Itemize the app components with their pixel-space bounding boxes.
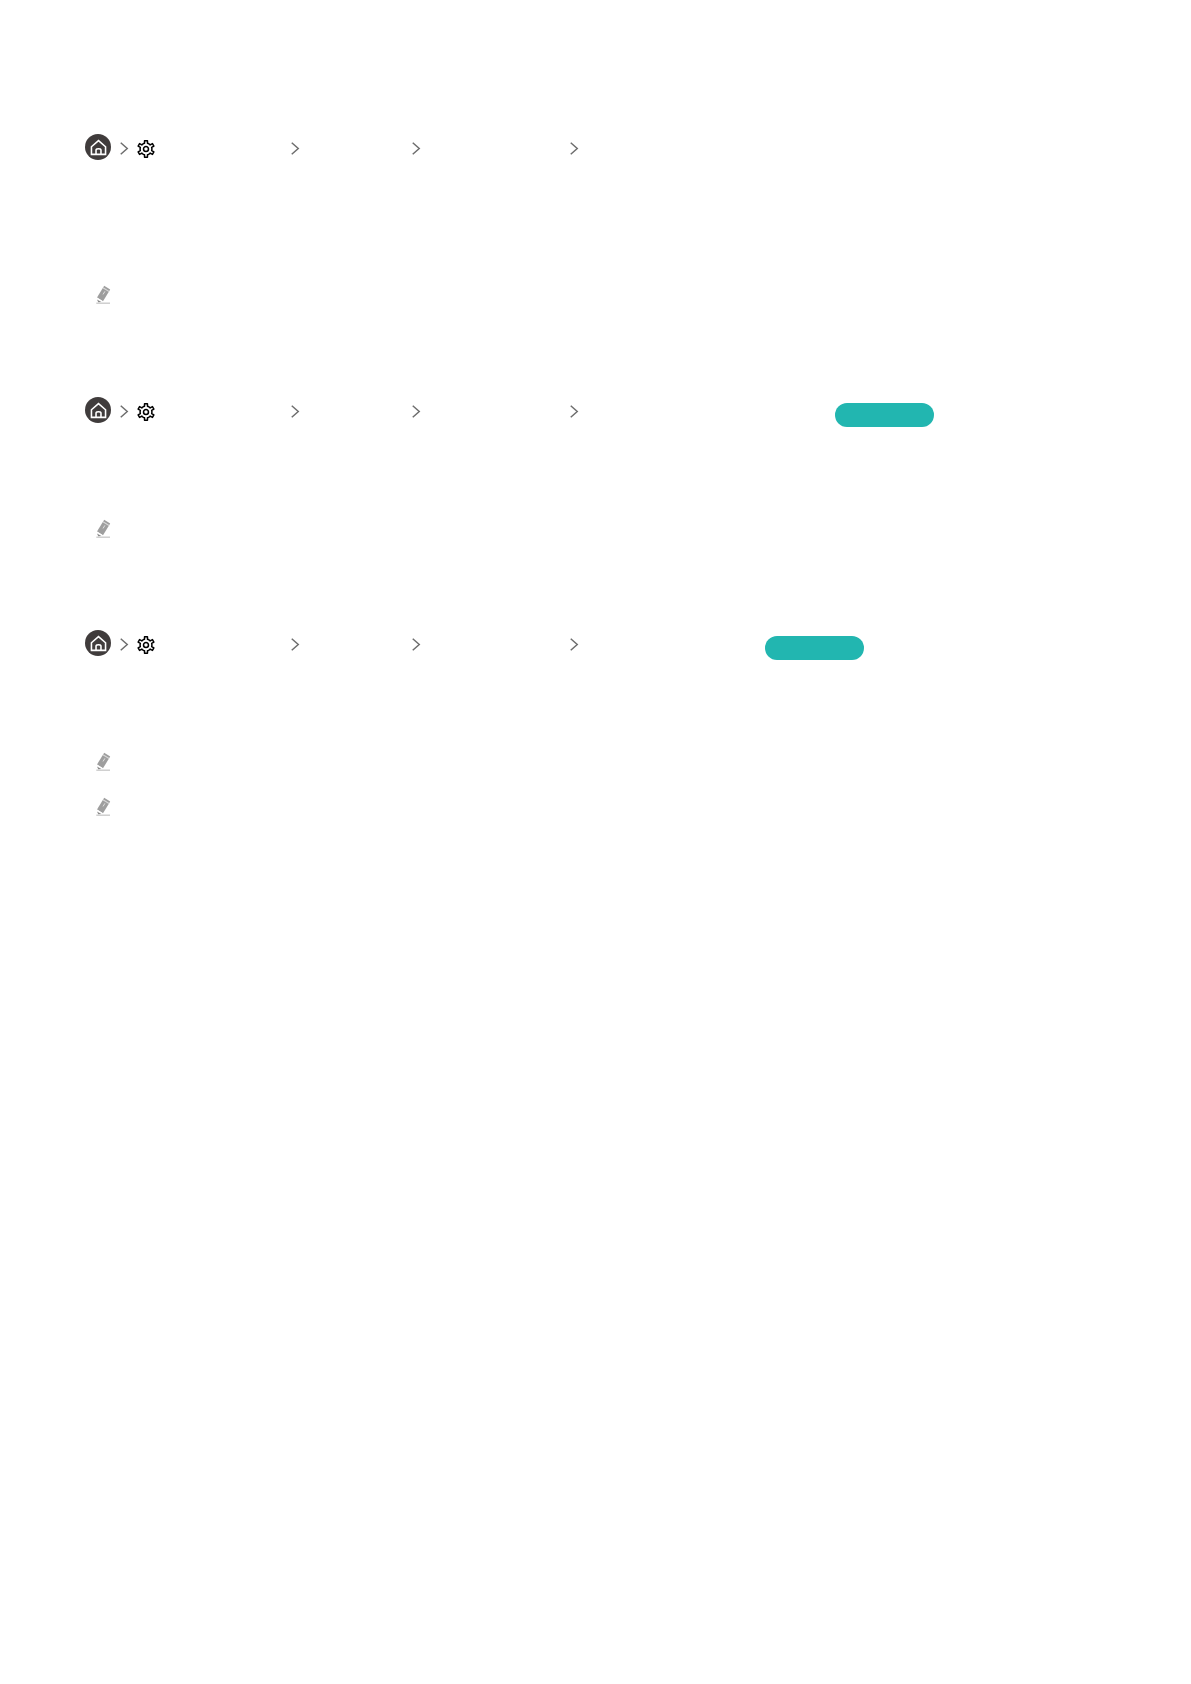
button[interactable]: Open bbox=[835, 403, 934, 427]
button[interactable]: Home bbox=[85, 134, 111, 160]
button[interactable]: Home bbox=[85, 397, 111, 423]
button[interactable]: Settings bbox=[137, 403, 155, 421]
button[interactable]: Settings bbox=[137, 636, 155, 654]
button[interactable]: Settings bbox=[137, 140, 155, 158]
button[interactable]: Home bbox=[85, 630, 111, 656]
button[interactable]: Note bbox=[96, 285, 110, 304]
button[interactable]: Open bbox=[765, 636, 864, 660]
button[interactable]: Note bbox=[96, 519, 110, 538]
button[interactable]: Note bbox=[96, 797, 110, 816]
button[interactable]: Note bbox=[96, 752, 110, 771]
